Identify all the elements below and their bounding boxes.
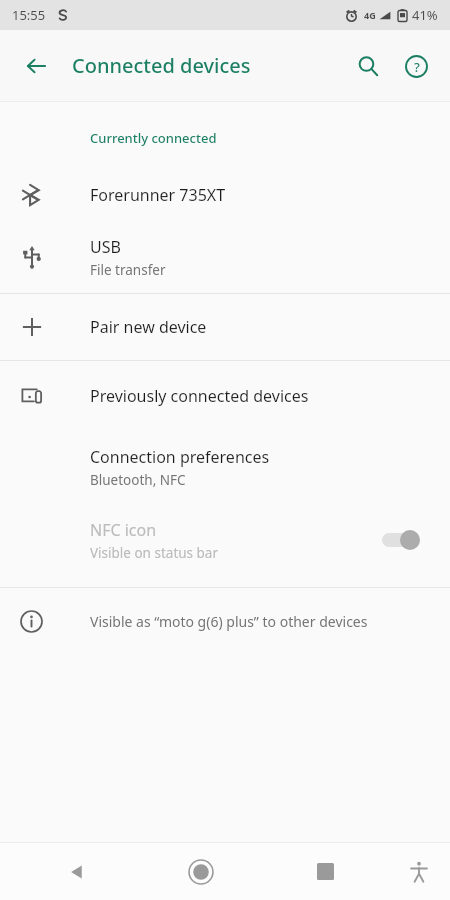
button[interactable]: Search xyxy=(344,42,392,90)
staticText: 4G xyxy=(364,9,376,21)
button[interactable]: Help xyxy=(392,42,440,90)
button[interactable]: NFC icon xyxy=(0,503,450,577)
staticText: Pair new device xyxy=(90,316,207,338)
staticText: Forerunner 735XT xyxy=(90,184,226,206)
button[interactable]: Pair new device xyxy=(0,294,450,360)
button[interactable]: Forerunner 735XT xyxy=(0,166,450,224)
staticText: Connection preferences xyxy=(90,446,270,468)
button[interactable]: NFC icon toggle xyxy=(378,525,430,555)
button[interactable]: Accessibility xyxy=(388,843,450,900)
button[interactable]: Recent apps xyxy=(263,843,388,900)
staticText: 15:55 xyxy=(12,6,46,24)
staticText: USB xyxy=(90,236,121,258)
staticText: NFC icon xyxy=(90,519,157,541)
button[interactable]: Previously connected devices xyxy=(0,361,450,431)
button[interactable]: Home xyxy=(138,843,263,900)
staticText: 41% xyxy=(412,6,438,24)
button[interactable]: Back xyxy=(14,843,138,900)
staticText: Visible as “moto g(6) plus” to other dev… xyxy=(90,612,368,631)
button[interactable]: USB xyxy=(0,224,450,290)
staticText: File transfer xyxy=(90,261,166,279)
button[interactable]: Connection preferences xyxy=(0,431,450,503)
staticText: Visible on status bar xyxy=(90,544,219,562)
staticText: ? xyxy=(414,58,420,76)
staticText: Currently connected xyxy=(90,129,217,147)
staticText: Previously connected devices xyxy=(90,385,309,407)
staticText: Bluetooth, NFC xyxy=(90,471,186,489)
button[interactable]: Back xyxy=(12,42,60,90)
staticText: Connected devices xyxy=(72,52,251,79)
